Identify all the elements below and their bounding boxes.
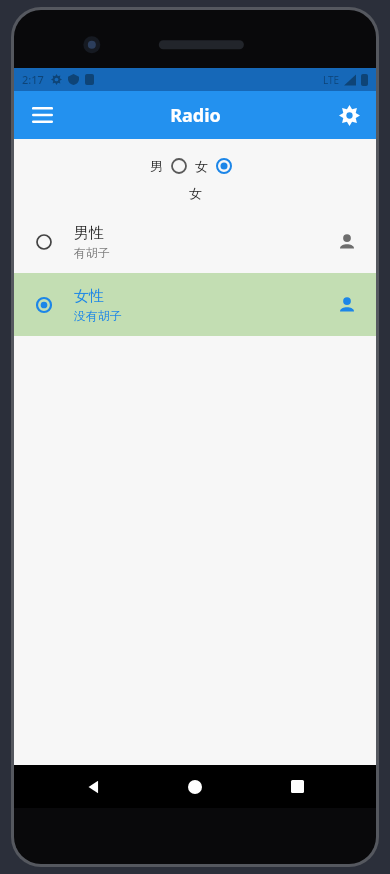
button[interactable]: Back: [70, 765, 116, 808]
staticText: LTE: [323, 73, 340, 87]
button[interactable]: Home: [172, 765, 218, 808]
button[interactable]: 女性: [14, 273, 376, 336]
staticText: Radio: [170, 103, 221, 128]
staticText: 女: [195, 158, 208, 174]
staticText: 女: [189, 185, 202, 201]
button[interactable]: Female radio: [208, 150, 240, 182]
button[interactable]: Settings: [327, 93, 371, 137]
staticText: 2:17: [22, 72, 44, 87]
staticText: 男: [150, 158, 163, 174]
staticText: 男性: [74, 224, 104, 243]
button[interactable]: 男性: [14, 210, 376, 273]
staticText: 没有胡子: [74, 308, 122, 323]
button[interactable]: Person: [334, 229, 360, 255]
button[interactable]: Recent apps: [274, 765, 320, 808]
button[interactable]: Male radio: [163, 150, 195, 182]
staticText: 有胡子: [74, 245, 110, 260]
button[interactable]: Person: [334, 292, 360, 318]
staticText: 女性: [74, 287, 104, 306]
button[interactable]: Menu: [20, 93, 64, 137]
